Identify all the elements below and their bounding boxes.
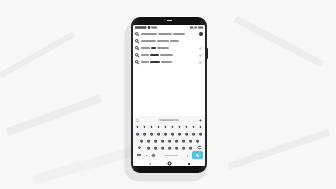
button[interactable]: Home xyxy=(167,161,172,166)
button[interactable]: Key xyxy=(169,123,176,130)
button[interactable] xyxy=(159,119,179,121)
button[interactable]: Key xyxy=(197,123,204,130)
button[interactable]: Recent apps xyxy=(186,161,191,166)
button[interactable]: Key xyxy=(162,123,169,130)
button[interactable]: Back xyxy=(147,161,152,166)
button[interactable]: Key xyxy=(148,123,155,130)
button[interactable]: Key xyxy=(190,123,197,130)
button[interactable]: Search xyxy=(192,151,203,159)
button[interactable]: Key xyxy=(197,130,204,137)
button[interactable]: Key xyxy=(141,123,148,130)
button[interactable]: Key xyxy=(145,144,152,151)
button[interactable]: Key xyxy=(176,123,183,130)
button[interactable]: Key xyxy=(134,130,141,137)
button[interactable]: Key xyxy=(183,130,190,137)
button[interactable]: Account xyxy=(199,32,203,36)
button[interactable]: Key xyxy=(187,137,194,144)
button[interactable]: Key xyxy=(173,137,180,144)
button[interactable]: Key xyxy=(159,144,166,151)
button[interactable]: Key xyxy=(152,144,159,151)
button[interactable]: Insert suggestion xyxy=(199,60,203,64)
button[interactable]: Key xyxy=(166,144,173,151)
button[interactable]: Emoji xyxy=(136,119,139,122)
button[interactable]: Insert suggestion xyxy=(133,51,205,58)
button[interactable]: More options xyxy=(199,119,202,122)
button[interactable]: Symbols xyxy=(134,151,143,159)
button[interactable]: Comma xyxy=(143,151,150,159)
button[interactable]: Key xyxy=(169,130,176,137)
button[interactable]: Key xyxy=(152,137,159,144)
button[interactable]: Space xyxy=(158,151,183,159)
button[interactable]: Key xyxy=(173,144,180,151)
button[interactable]: Key xyxy=(138,137,145,144)
button[interactable]: Key xyxy=(180,137,187,144)
button[interactable]: Insert suggestion xyxy=(133,44,205,51)
button[interactable]: Insert suggestion xyxy=(133,58,205,65)
button[interactable]: Key xyxy=(194,137,201,144)
button[interactable]: Change language xyxy=(150,151,157,159)
button[interactable]: Key xyxy=(155,130,162,137)
button[interactable]: Key xyxy=(134,123,141,130)
button[interactable]: Key xyxy=(183,123,190,130)
button[interactable]: Shift xyxy=(134,144,145,151)
button[interactable]: Key xyxy=(145,137,152,144)
button[interactable]: Key xyxy=(176,130,183,137)
button[interactable]: Insert suggestion xyxy=(199,53,203,57)
button[interactable]: Key xyxy=(190,130,197,137)
button[interactable]: Backspace xyxy=(194,144,204,151)
button[interactable]: Key xyxy=(187,144,194,151)
button[interactable]: Key xyxy=(180,144,187,151)
button[interactable] xyxy=(133,37,205,44)
button[interactable]: Period xyxy=(184,151,191,159)
button[interactable]: Key xyxy=(155,123,162,130)
button[interactable]: Insert suggestion xyxy=(199,46,203,50)
button[interactable]: Key xyxy=(148,130,155,137)
button[interactable]: Key xyxy=(162,130,169,137)
button[interactable]: Account xyxy=(133,30,205,37)
button[interactable]: Key xyxy=(166,137,173,144)
button[interactable]: Key xyxy=(159,137,166,144)
button[interactable]: Key xyxy=(141,130,148,137)
